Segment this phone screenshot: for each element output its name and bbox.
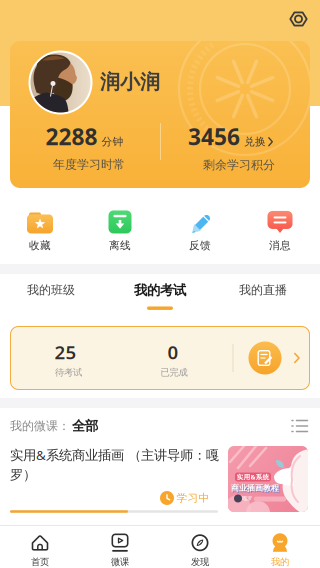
staticText: 消息 bbox=[269, 239, 291, 252]
button[interactable]: 3456 bbox=[188, 121, 273, 151]
button[interactable]: 我的班级 bbox=[6, 273, 96, 307]
staticText: 实用&系统 bbox=[236, 473, 269, 481]
staticText: 收藏 bbox=[29, 239, 51, 252]
staticText: 离线 bbox=[109, 239, 131, 252]
button[interactable]: 首页 bbox=[0, 525, 80, 568]
staticText: 0 bbox=[167, 340, 178, 364]
staticText: 我的直播 bbox=[239, 283, 287, 297]
staticText: 我的微课： bbox=[10, 419, 70, 433]
staticText: 罗） bbox=[10, 467, 36, 483]
button[interactable]: 筛选 bbox=[291, 419, 308, 432]
button[interactable]: 反馈 bbox=[165, 210, 235, 252]
staticText: 我的考试 bbox=[134, 282, 186, 298]
staticText: 3456 bbox=[188, 121, 240, 151]
button[interactable]: 头像 bbox=[28, 50, 92, 114]
staticText: 待考试 bbox=[55, 367, 82, 378]
staticText: 商业插画教程 bbox=[231, 483, 279, 493]
staticText: 反馈 bbox=[189, 239, 211, 252]
staticText: 我的 bbox=[271, 556, 289, 568]
staticText: 年度学习时常 bbox=[53, 157, 125, 172]
button[interactable]: 设置 bbox=[287, 8, 309, 30]
staticText: 润小润 bbox=[100, 70, 160, 94]
staticText: 分钟 bbox=[101, 135, 123, 148]
button[interactable]: 发现 bbox=[160, 525, 240, 568]
button[interactable]: 离线 bbox=[85, 210, 155, 252]
staticText: 学习中 bbox=[176, 491, 209, 504]
staticText: 嘎罗 bbox=[242, 495, 252, 502]
staticText: 微课 bbox=[111, 556, 129, 568]
staticText: 兑换 bbox=[244, 135, 266, 148]
staticText: 发现 bbox=[191, 556, 209, 568]
button[interactable]: 我的考试 bbox=[134, 282, 186, 310]
staticText: 商业插画教程 bbox=[232, 484, 280, 494]
staticText: 已完成 bbox=[160, 367, 187, 378]
button[interactable]: 我的 bbox=[240, 525, 320, 568]
staticText: 全部 bbox=[72, 418, 98, 434]
staticText: 25 bbox=[54, 340, 76, 364]
staticText: 我的班级 bbox=[27, 283, 75, 297]
button[interactable]: 实用&系统商业插画 （主讲导师：嘎 bbox=[0, 440, 320, 520]
button[interactable]: 我的直播 bbox=[218, 273, 308, 307]
button[interactable]: 消息 bbox=[245, 210, 315, 252]
button[interactable]: 微课 bbox=[80, 525, 160, 568]
staticText: 首页 bbox=[31, 556, 49, 568]
staticText: 实用&系统商业插画 （主讲导师：嘎 bbox=[10, 446, 219, 464]
staticText: 2288 bbox=[45, 121, 97, 151]
button[interactable]: 收藏 bbox=[5, 210, 75, 252]
button[interactable]: 25 bbox=[10, 326, 310, 390]
staticText: 剩余学习积分 bbox=[203, 158, 275, 172]
